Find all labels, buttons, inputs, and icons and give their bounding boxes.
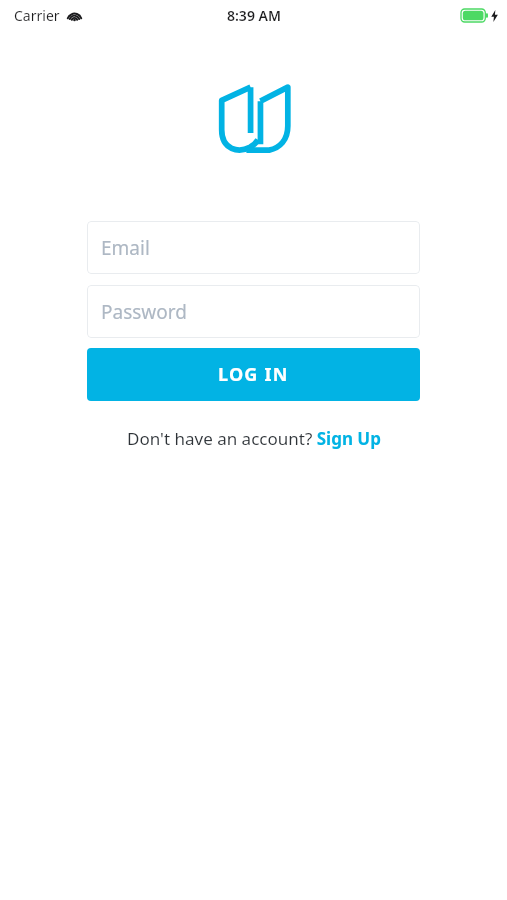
staticText: LOG IN bbox=[218, 362, 289, 387]
staticText: Carrier bbox=[14, 6, 60, 25]
button[interactable]: Email bbox=[87, 221, 420, 274]
button[interactable]: LOG IN bbox=[87, 348, 420, 401]
staticText: Email bbox=[101, 235, 150, 261]
staticText: 8:39 AM bbox=[227, 6, 281, 25]
staticText: Password bbox=[101, 299, 187, 325]
staticText: Don't have an account? Sign Up bbox=[127, 427, 381, 450]
button[interactable]: Don't have an account? Sign Up bbox=[87, 427, 420, 450]
button[interactable]: Password bbox=[87, 285, 420, 338]
